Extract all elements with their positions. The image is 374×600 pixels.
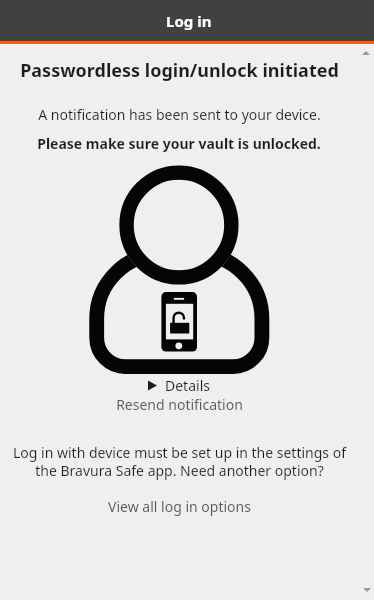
staticText: Passwordless login/unlock initiated — [20, 58, 339, 83]
other: Scroll down — [363, 588, 371, 592]
button[interactable]: View all log in options — [108, 497, 251, 516]
staticText: A notification has been sent to your dev… — [38, 105, 321, 124]
other: Scroll up — [362, 51, 370, 55]
button[interactable]: Resend notification — [116, 395, 243, 414]
staticText: Details — [165, 376, 210, 395]
staticText: Log in — [166, 11, 212, 31]
staticText: Log in with device must be set up in the… — [13, 443, 346, 480]
button[interactable]: Details — [148, 376, 210, 395]
staticText: Please make sure your vault is unlocked. — [37, 134, 321, 153]
